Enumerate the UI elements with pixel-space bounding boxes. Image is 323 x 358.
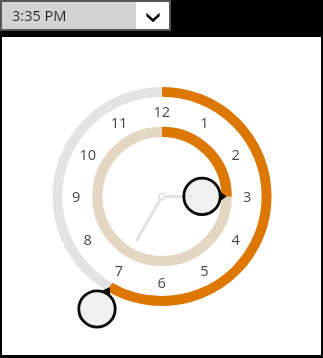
- button[interactable]: Expand time list: [136, 2, 169, 29]
- button[interactable]: Hours handle, 3 o'clock: [182, 177, 221, 216]
- button[interactable]: Minutes handle, 35 minutes: [77, 289, 116, 328]
- staticText: 3:35 PM: [12, 5, 67, 25]
- button[interactable]: 3:35 PM: [2, 2, 169, 29]
